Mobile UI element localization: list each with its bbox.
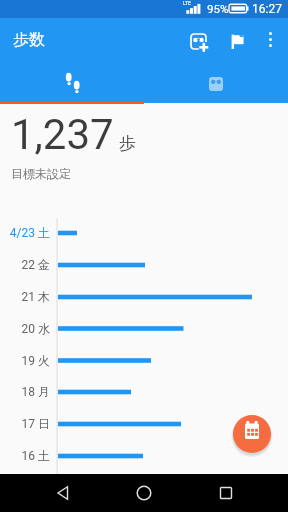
staticText: 歩数 [13,30,45,50]
staticText: 17 日 [21,416,50,431]
staticText: 21 木 [21,289,50,304]
staticText: 16 土 [21,448,50,463]
staticText: LTE [183,0,191,6]
staticText: 歩 [119,133,136,154]
button[interactable] [44,474,81,512]
staticText: 18 月 [21,384,50,399]
staticText: 16:27 [252,2,282,16]
button[interactable] [186,28,214,56]
staticText: 1,237 [11,110,114,159]
button[interactable] [125,474,163,512]
staticText: 目標未設定 [11,166,71,181]
button[interactable] [233,415,271,453]
staticText: 4/23 土 [9,225,50,240]
staticText: 22 金 [21,257,50,272]
button[interactable] [207,474,245,512]
button[interactable] [144,60,288,103]
button[interactable] [224,28,252,56]
staticText: 19 火 [21,353,50,368]
button[interactable] [256,28,284,56]
staticText: 95% [207,2,229,15]
button[interactable] [0,60,144,103]
staticText: 20 水 [21,321,50,336]
